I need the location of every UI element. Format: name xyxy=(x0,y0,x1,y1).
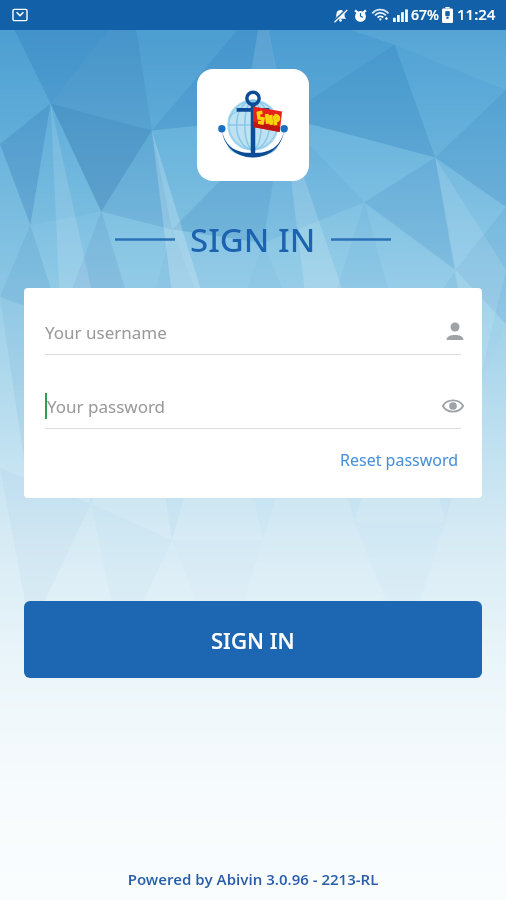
button[interactable]: Reset password xyxy=(338,443,461,477)
staticText: Your username xyxy=(45,321,444,344)
staticText: SIGN IN xyxy=(190,217,316,262)
staticText: 11:24 xyxy=(457,4,496,24)
staticText: 67% xyxy=(411,5,439,24)
staticText: Powered by Abivin 3.0.96 - 2213-RL xyxy=(0,869,506,889)
button[interactable]: Your password xyxy=(24,384,482,428)
button[interactable]: SIGN IN xyxy=(24,601,482,678)
staticText: Reset password xyxy=(340,449,459,471)
button[interactable]: Your username xyxy=(24,310,482,354)
staticText: SIGN IN xyxy=(211,625,295,655)
staticText: Your password xyxy=(47,395,166,418)
button[interactable]: Show password xyxy=(440,393,466,419)
